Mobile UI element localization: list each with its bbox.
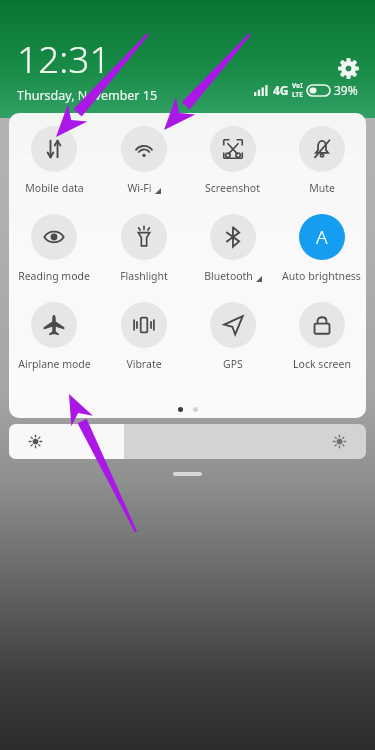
- staticText: 39%: [334, 82, 358, 98]
- staticText: LTE: [292, 90, 303, 99]
- staticText: 12:31: [17, 33, 111, 83]
- staticText: Mobile data: [25, 181, 84, 195]
- button[interactable]: Reading mode: [9, 214, 99, 283]
- button[interactable]: Flashlight: [99, 214, 188, 283]
- button[interactable]: Screenshot: [188, 126, 277, 195]
- button[interactable]: Airplane mode: [9, 302, 99, 371]
- button[interactable]: Lock screen: [277, 302, 366, 371]
- staticText: Airplane mode: [18, 357, 91, 371]
- button[interactable]: Vibrate: [99, 302, 188, 371]
- staticText: Reading mode: [18, 269, 90, 283]
- button[interactable]: A: [277, 214, 366, 283]
- staticText: Bluetooth: [204, 269, 253, 283]
- staticText: Wi-Fi: [127, 181, 152, 195]
- button[interactable]: Bluetooth: [188, 214, 277, 283]
- staticText: 4G: [273, 82, 289, 98]
- staticText: Vibrate: [126, 357, 162, 371]
- button[interactable]: Wi-Fi: [99, 126, 188, 195]
- button[interactable]: [9, 424, 366, 459]
- staticText: Mute: [309, 181, 335, 195]
- staticText: Screenshot: [205, 181, 260, 195]
- button[interactable]: GPS: [188, 302, 277, 371]
- staticText: Lock screen: [293, 357, 351, 371]
- staticText: Auto brightness: [282, 269, 361, 283]
- staticText: Thursday, November 15: [17, 87, 158, 104]
- staticText: GPS: [223, 357, 243, 371]
- staticText: A: [316, 224, 328, 250]
- staticText: Flashlight: [120, 269, 168, 283]
- button[interactable]: Mute: [277, 126, 366, 195]
- staticText: VoI: [292, 81, 303, 90]
- button[interactable]: Mobile data: [9, 126, 99, 195]
- button[interactable]: Settings: [333, 53, 363, 83]
